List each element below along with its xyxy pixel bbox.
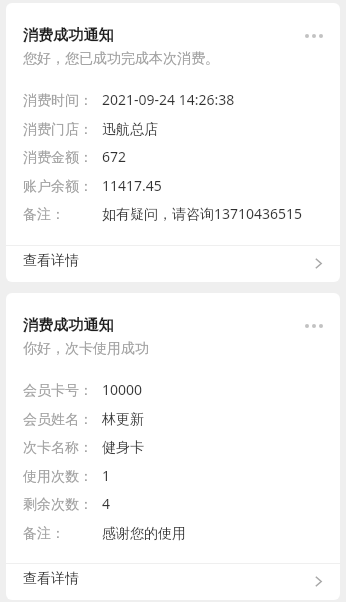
staticText: 健身卡 <box>102 439 144 456</box>
staticText: 您好，您已成功完成本次消费。 <box>23 50 219 68</box>
staticText: 10000 <box>102 382 143 399</box>
staticText: 2021-09-24 14:26:38 <box>102 92 235 109</box>
staticText: 消费成功通知 <box>23 25 114 44</box>
staticText: 备注： <box>23 206 65 223</box>
staticText: 查看详情 <box>23 252 79 270</box>
staticText: 消费金额： <box>23 149 93 166</box>
staticText: 4 <box>102 496 111 513</box>
staticText: 使用次数： <box>23 468 93 485</box>
button[interactable]: 查看详情 <box>6 246 340 282</box>
staticText: 账户余额： <box>23 178 93 195</box>
staticText: 查看详情 <box>23 570 79 588</box>
staticText: 剩余次数： <box>23 496 93 513</box>
staticText: 如有疑问，请咨询13710436515 <box>102 206 303 224</box>
staticText: 1 <box>102 468 111 485</box>
staticText: 会员卡号： <box>23 382 93 399</box>
button[interactable]: More options <box>299 318 329 334</box>
staticText: 672 <box>102 149 127 166</box>
staticText: 消费时间： <box>23 92 93 109</box>
staticText: 11417.45 <box>102 178 162 195</box>
staticText: 感谢您的使用 <box>102 525 186 542</box>
button[interactable]: More options <box>299 28 329 44</box>
staticText: 消费成功通知 <box>23 315 114 334</box>
staticText: 次卡名称： <box>23 439 93 456</box>
staticText: 你好，次卡使用成功 <box>23 340 149 358</box>
staticText: 备注： <box>23 525 65 542</box>
staticText: 会员姓名： <box>23 411 93 428</box>
staticText: 消费门店： <box>23 121 93 138</box>
staticText: 林更新 <box>102 411 144 428</box>
button[interactable]: 查看详情 <box>6 564 340 600</box>
staticText: 迅航总店 <box>102 121 158 138</box>
